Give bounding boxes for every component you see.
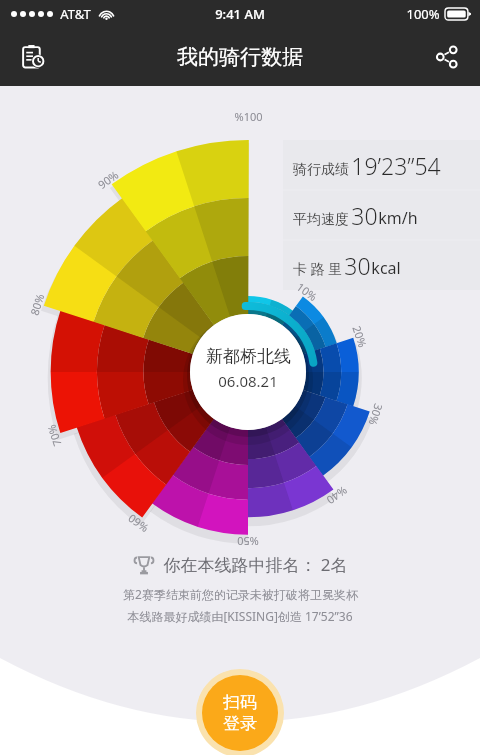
staticText: 10% — [294, 279, 320, 304]
staticText: kcal — [371, 257, 401, 279]
staticText: 登录 — [223, 713, 257, 734]
staticText: 20% — [349, 324, 371, 349]
staticText: 新都桥北线 — [206, 346, 291, 367]
button[interactable]: 扫码 — [196, 669, 284, 755]
staticText: 06.08.21 — [218, 371, 278, 391]
staticText: 我的骑行数据 — [177, 44, 303, 70]
staticText: 30% — [365, 402, 387, 427]
staticText: AT&T — [60, 5, 91, 23]
staticText: 100% — [406, 5, 440, 23]
staticText: 90% — [95, 167, 121, 192]
button[interactable]: Share — [424, 34, 470, 80]
button[interactable]: Records — [10, 34, 56, 80]
staticText: 平均速度 — [291, 209, 351, 228]
staticText: 第2赛季结束前您的记录未被打破将卫冕奖杯 — [123, 586, 358, 602]
staticText: 骑行成绩 — [291, 159, 351, 178]
staticText: 80% — [26, 292, 48, 317]
staticText: %40 — [324, 483, 350, 508]
staticText: 30 — [344, 250, 371, 281]
staticText: 30 — [351, 200, 378, 231]
staticText: 你在本线路中排名： 2名 — [163, 553, 348, 576]
staticText: 扫码 — [223, 692, 257, 713]
staticText: 19’23”54 — [351, 150, 441, 181]
button[interactable]: 卡 路 里 — [283, 240, 480, 290]
staticText: %60 — [125, 511, 151, 536]
staticText: 9:41 AM — [215, 5, 265, 23]
staticText: 本线路最好成绩由[KISSING]创造 17’52”36 — [127, 608, 353, 624]
button[interactable]: 骑行成绩 — [283, 140, 480, 190]
staticText: %50 — [237, 534, 259, 549]
staticText: 卡 路 里 — [291, 259, 344, 278]
staticText: 70% — [43, 423, 65, 448]
button[interactable]: 平均速度 — [283, 190, 480, 240]
staticText: km/h — [378, 207, 418, 229]
staticText: %100 — [234, 109, 263, 124]
